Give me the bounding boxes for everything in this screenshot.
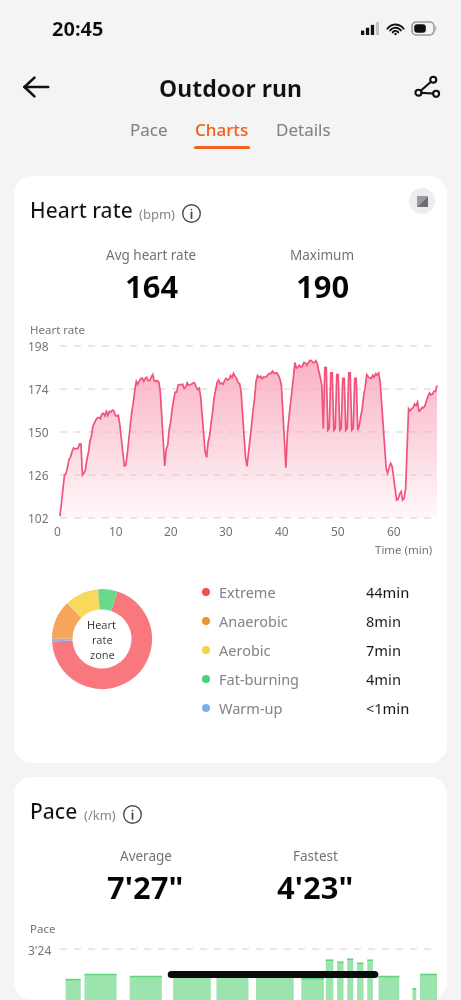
staticText: Heart bbox=[87, 617, 117, 632]
button[interactable]: Heart rate bbox=[14, 176, 447, 763]
staticText: Avg heart rate bbox=[106, 246, 197, 264]
button[interactable]: Fat-burning bbox=[202, 664, 432, 693]
button[interactable]: Charts bbox=[188, 118, 256, 149]
staticText: 44min bbox=[366, 582, 410, 602]
staticText: 150 bbox=[28, 424, 49, 440]
staticText: 7'27" bbox=[107, 866, 184, 908]
staticText: Details bbox=[276, 118, 331, 141]
staticText: 50 bbox=[331, 523, 345, 539]
staticText: 126 bbox=[28, 467, 49, 483]
staticText: Outdoor run bbox=[159, 72, 302, 103]
button[interactable]: Expand chart bbox=[409, 188, 435, 214]
staticText: Time (min) bbox=[375, 542, 433, 558]
staticText: 3'24 bbox=[28, 942, 52, 958]
button[interactable]: Details bbox=[270, 118, 337, 146]
staticText: Warm-up bbox=[219, 698, 283, 718]
button[interactable]: Info bbox=[123, 805, 142, 824]
staticText: 20 bbox=[164, 523, 178, 539]
staticText: Maximum bbox=[290, 246, 355, 264]
staticText: <1min bbox=[366, 698, 410, 718]
staticText: rate bbox=[92, 632, 113, 647]
button[interactable]: Info bbox=[182, 204, 201, 223]
staticText: 20:45 bbox=[52, 15, 104, 42]
button[interactable]: Extreme bbox=[202, 577, 432, 606]
staticText: 4'23" bbox=[277, 866, 354, 908]
staticText: (/km) bbox=[84, 806, 116, 824]
button[interactable]: Pace bbox=[14, 777, 447, 1000]
staticText: Heart rate bbox=[30, 196, 133, 225]
staticText: 7min bbox=[366, 640, 402, 660]
staticText: Anaerobic bbox=[219, 611, 288, 631]
staticText: 8min bbox=[366, 611, 402, 631]
button[interactable]: Warm-up bbox=[202, 693, 432, 722]
button[interactable]: Share bbox=[403, 63, 451, 111]
staticText: 0 bbox=[54, 523, 61, 539]
staticText: 174 bbox=[28, 381, 49, 397]
staticText: Pace bbox=[130, 118, 168, 141]
staticText: 30 bbox=[219, 523, 233, 539]
staticText: Aerobic bbox=[219, 640, 271, 660]
staticText: Pace bbox=[30, 797, 78, 826]
staticText: Pace bbox=[30, 921, 56, 937]
staticText: Average bbox=[120, 847, 172, 865]
staticText: 102 bbox=[28, 510, 49, 526]
staticText: Heart rate bbox=[30, 322, 85, 338]
staticText: 4min bbox=[366, 669, 402, 689]
staticText: 190 bbox=[296, 265, 350, 307]
button[interactable]: Back bbox=[12, 63, 60, 111]
button[interactable]: Aerobic bbox=[202, 635, 432, 664]
staticText: Fat-burning bbox=[219, 669, 300, 689]
staticText: 60 bbox=[387, 523, 401, 539]
button[interactable]: Anaerobic bbox=[202, 606, 432, 635]
staticText: Extreme bbox=[219, 582, 276, 602]
staticText: 40 bbox=[275, 523, 289, 539]
staticText: (bpm) bbox=[139, 205, 175, 223]
staticText: Fastest bbox=[293, 847, 338, 865]
staticText: 198 bbox=[28, 338, 49, 354]
staticText: Charts bbox=[195, 118, 249, 141]
staticText: 10 bbox=[109, 523, 123, 539]
button[interactable]: Pace bbox=[124, 118, 174, 146]
staticText: zone bbox=[90, 647, 115, 662]
staticText: 164 bbox=[125, 265, 179, 307]
